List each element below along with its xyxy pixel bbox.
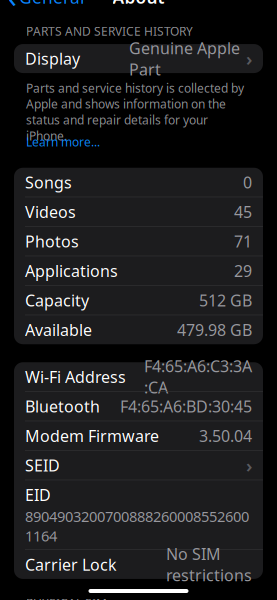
staticText: PHYSICAL SIM bbox=[26, 595, 107, 600]
staticText: Parts and service history is collected b… bbox=[26, 80, 244, 144]
staticText: Modem Firmware bbox=[25, 425, 159, 446]
button[interactable]: Modem Firmware bbox=[14, 421, 263, 451]
staticText: 89049032007008882600085526001164 bbox=[25, 506, 249, 545]
staticText: 479.98 GB bbox=[177, 319, 252, 340]
staticText: 512 GB bbox=[199, 290, 252, 311]
button[interactable]: Carrier Lock bbox=[14, 550, 263, 579]
staticText: Bluetooth bbox=[25, 396, 100, 417]
staticText: 29 bbox=[234, 260, 252, 281]
staticText: › bbox=[246, 46, 252, 71]
staticText: Learn more... bbox=[26, 134, 100, 150]
staticText: Genuine Apple Part bbox=[129, 37, 240, 80]
staticText: 0 bbox=[243, 172, 252, 193]
staticText: F4:65:A6:C3:3A:CA bbox=[144, 355, 252, 398]
staticText: 71 bbox=[234, 231, 252, 252]
staticText: Photos bbox=[25, 231, 79, 252]
button[interactable]: Capacity bbox=[14, 286, 263, 315]
staticText: Wi-Fi Address bbox=[25, 366, 126, 387]
staticText: ‹ bbox=[8, 0, 17, 15]
button[interactable]: Wi-Fi Address bbox=[14, 362, 263, 392]
staticText: Capacity bbox=[25, 290, 89, 311]
staticText: F4:65:A6:BD:30:45 bbox=[120, 396, 252, 417]
staticText: No SIM restrictions bbox=[166, 543, 252, 586]
button[interactable]: Applications bbox=[14, 256, 263, 286]
staticText: EID bbox=[25, 484, 51, 505]
staticText: Available bbox=[25, 319, 92, 340]
button[interactable]: Bluetooth bbox=[14, 392, 263, 421]
button[interactable]: EID bbox=[14, 480, 263, 550]
button[interactable]: Display bbox=[14, 44, 263, 73]
staticText: Carrier Lock bbox=[25, 554, 117, 575]
button[interactable]: Photos bbox=[14, 227, 263, 256]
staticText: 45 bbox=[234, 201, 252, 222]
button[interactable]: Learn more... bbox=[0, 134, 277, 150]
staticText: › bbox=[246, 453, 252, 478]
staticText: Display bbox=[25, 48, 80, 69]
staticText: About bbox=[112, 0, 164, 9]
button[interactable]: ‹ bbox=[0, 0, 92, 11]
button[interactable]: Videos bbox=[14, 197, 263, 227]
staticText: SEID bbox=[25, 455, 60, 476]
button[interactable]: Songs bbox=[14, 168, 263, 197]
button[interactable]: Available bbox=[14, 315, 263, 344]
staticText: 3.50.04 bbox=[199, 425, 252, 446]
staticText: General bbox=[19, 0, 84, 9]
staticText: Songs bbox=[25, 172, 72, 193]
staticText: Applications bbox=[25, 260, 118, 281]
staticText: Videos bbox=[25, 201, 76, 222]
staticText: PARTS AND SERVICE HISTORY bbox=[26, 23, 193, 39]
button[interactable]: SEID bbox=[14, 451, 263, 480]
